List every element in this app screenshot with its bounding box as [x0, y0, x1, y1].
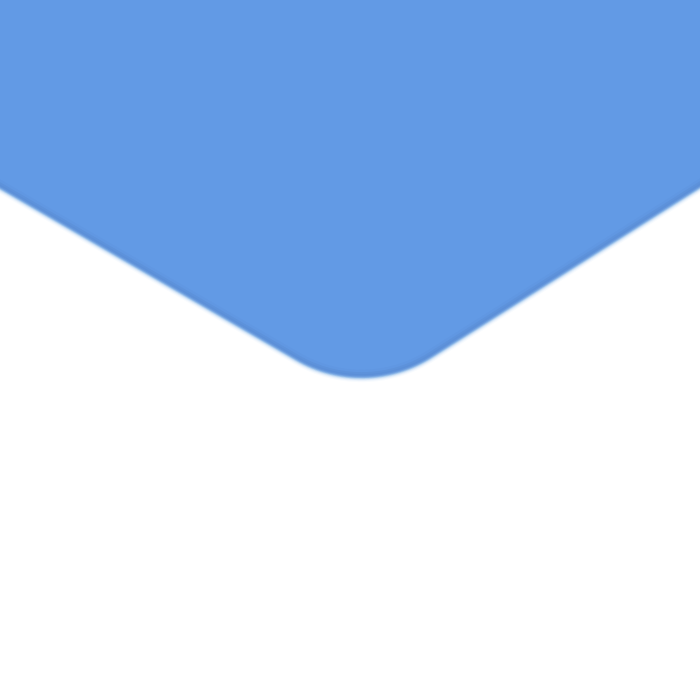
button[interactable]: Blue card	[0, 0, 700, 700]
